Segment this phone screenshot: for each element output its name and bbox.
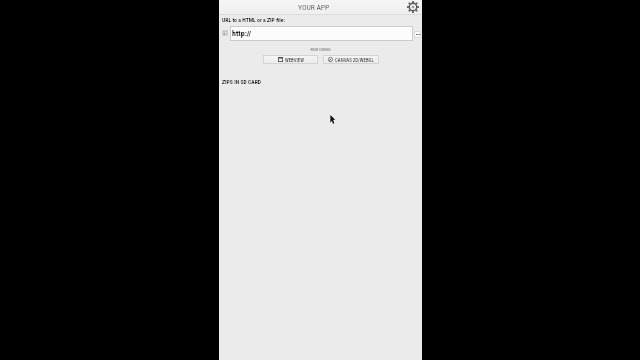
button[interactable]: Browse files [414, 31, 421, 38]
staticText: RUN USING [219, 47, 422, 52]
staticText: http:// [232, 29, 252, 38]
staticText: CANVAS 2D/WEBGL [335, 57, 374, 63]
button[interactable]: WEBVIEW [263, 55, 318, 64]
staticText: WEBVIEW [285, 57, 304, 63]
button[interactable]: Settings [406, 0, 420, 14]
button[interactable]: CANVAS 2D/WEBGL [323, 55, 379, 64]
button[interactable]: http:// [230, 26, 413, 41]
staticText: URL to a HTML or a ZIP file: [222, 17, 285, 24]
staticText: ZIPS IN SD CARD [222, 79, 262, 86]
staticText: YOUR APP [298, 3, 330, 12]
